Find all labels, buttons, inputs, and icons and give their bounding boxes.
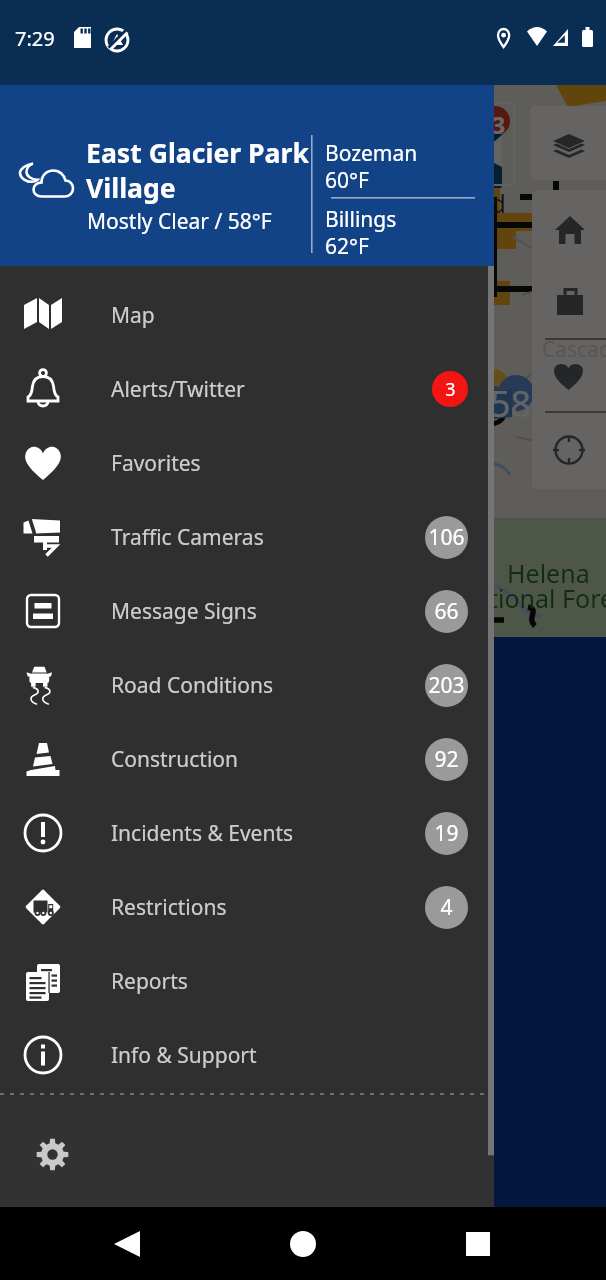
button[interactable]: Traffic Cameras <box>0 500 494 574</box>
staticText: East Glacier Park Village <box>86 135 309 206</box>
button[interactable]: East Glacier Park Village <box>0 85 494 266</box>
button[interactable]: Back <box>77 1207 177 1280</box>
staticText: Road Conditions <box>111 671 273 700</box>
staticText: 203 <box>428 671 465 700</box>
staticText: Cascade <box>542 335 606 364</box>
staticText: 106 <box>428 523 465 552</box>
staticText: 19 <box>434 819 459 848</box>
staticText: 3 <box>492 109 506 140</box>
button[interactable]: Incidents & Events <box>0 796 494 870</box>
staticText: Restrictions <box>111 893 227 922</box>
staticText: Incidents & Events <box>111 819 294 848</box>
button[interactable]: Settings <box>0 1095 494 1207</box>
staticText: 3 <box>445 377 456 402</box>
staticText: 92 <box>434 745 459 774</box>
staticText: Message Signs <box>111 597 257 626</box>
button[interactable]: Reports <box>0 944 494 1018</box>
button[interactable]: Road Conditions <box>0 648 494 722</box>
staticText: Construction <box>111 745 239 774</box>
staticText: Helena <box>507 556 590 590</box>
staticText: Reports <box>111 967 188 996</box>
button[interactable]: Alerts/Twitter <box>0 352 494 426</box>
staticText: Favorites <box>111 449 201 478</box>
button[interactable]: Favorites <box>0 426 494 500</box>
staticText: Traffic Cameras <box>111 523 264 552</box>
button[interactable]: Construction <box>0 722 494 796</box>
button[interactable]: Recent apps <box>428 1207 528 1280</box>
staticText: Map <box>111 301 155 330</box>
staticText: Info & Support <box>111 1041 257 1070</box>
button[interactable]: Map layers <box>530 106 606 180</box>
button[interactable]: Home <box>253 1207 353 1280</box>
button[interactable]: Map <box>0 278 494 352</box>
staticText: 4 <box>440 893 453 922</box>
staticText: 58 <box>490 379 532 428</box>
staticText: 7:29 <box>15 25 55 52</box>
button[interactable]: Restrictions <box>0 870 494 944</box>
button[interactable]: Billings 62°F <box>325 205 397 260</box>
staticText: Mostly Clear / 58°F <box>87 207 272 236</box>
button[interactable]: Bozeman 60°F <box>325 139 418 194</box>
button[interactable]: Message Signs <box>0 574 494 648</box>
staticText: d <box>490 185 506 220</box>
staticText: tional Fores <box>489 581 606 615</box>
staticText: 66 <box>434 597 459 626</box>
staticText: Alerts/Twitter <box>111 375 245 404</box>
button[interactable]: Info & Support <box>0 1018 494 1092</box>
